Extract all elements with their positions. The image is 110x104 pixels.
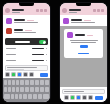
button[interactable]: Keyboard key (12, 80, 15, 85)
button[interactable]: OK (80, 45, 88, 48)
button[interactable]: Keyboard key (25, 80, 29, 85)
button[interactable]: Format tool (5, 72, 10, 77)
button[interactable]: Format tool (88, 95, 93, 100)
button[interactable]: Menu action (101, 9, 104, 12)
button[interactable]: Keyboard key (16, 87, 19, 92)
button[interactable]: Back (62, 8, 67, 13)
button[interactable]: Send (95, 96, 103, 100)
button[interactable] (5, 65, 48, 71)
button[interactable]: Back (5, 8, 10, 13)
button[interactable] (3, 45, 50, 51)
button[interactable] (77, 52, 90, 55)
button[interactable]: Keyboard key (35, 87, 39, 92)
button[interactable]: Keyboard key (11, 94, 14, 99)
button[interactable]: Format tool (76, 95, 81, 100)
button[interactable]: Format tool (17, 72, 22, 77)
button[interactable] (60, 16, 107, 26)
button[interactable]: Keyboard key (20, 80, 24, 85)
button[interactable]: Keyboard key (45, 80, 49, 85)
button[interactable]: Keyboard key (45, 87, 49, 92)
button[interactable]: Keyboard key (28, 94, 32, 99)
button[interactable] (3, 16, 50, 26)
button[interactable] (3, 57, 50, 63)
button[interactable]: Keyboard key (35, 80, 39, 85)
button[interactable]: Keyboard key (40, 80, 44, 85)
button[interactable]: Format tool (70, 95, 75, 100)
button[interactable]: Menu action (40, 9, 43, 12)
button[interactable]: Keyboard key (15, 94, 18, 99)
button[interactable]: Format tool (23, 72, 28, 77)
button[interactable]: Format tool (11, 72, 16, 77)
button[interactable]: Keyboard key (25, 87, 29, 92)
button[interactable]: Menu action (44, 9, 47, 12)
button[interactable]: Keyboard key (4, 80, 7, 85)
button[interactable]: Keyboard key (38, 94, 42, 99)
button[interactable]: Keyboard key (12, 87, 15, 92)
button[interactable]: Menu action (36, 9, 39, 12)
button[interactable]: Format tool (82, 95, 87, 100)
button[interactable]: Send (40, 73, 48, 77)
button[interactable]: Menu action (93, 9, 96, 12)
button[interactable]: Keyboard key (4, 87, 7, 92)
button[interactable]: Keyboard key (30, 87, 34, 92)
button[interactable]: Format tool (64, 95, 69, 100)
button[interactable]: Keyboard key (19, 94, 22, 99)
button[interactable]: Keyboard key (20, 87, 24, 92)
button[interactable] (3, 26, 50, 36)
button[interactable]: Keyboard key (16, 80, 19, 85)
button[interactable]: Keyboard key (40, 87, 44, 92)
button[interactable]: Keyboard key (8, 80, 11, 85)
button[interactable]: Toggle required (5, 38, 48, 45)
button[interactable]: Keyboard key (30, 80, 34, 85)
button[interactable]: Keyboard key (8, 87, 11, 92)
button[interactable] (3, 51, 50, 57)
button[interactable]: Keyboard key (33, 94, 37, 99)
button[interactable]: Menu action (97, 9, 100, 12)
button[interactable]: Keyboard key (23, 94, 27, 99)
button[interactable] (62, 89, 105, 94)
button[interactable]: Format tool (29, 72, 34, 77)
button[interactable]: Toggle required (39, 40, 46, 44)
